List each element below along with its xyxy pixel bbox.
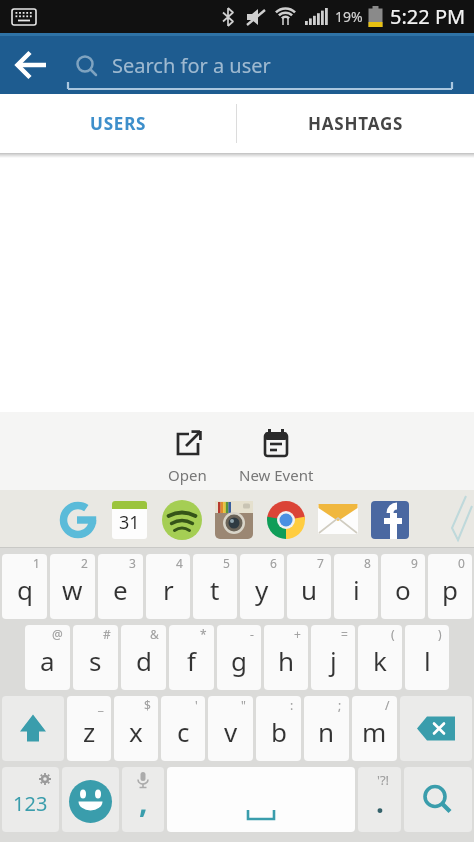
button[interactable]: j [311,625,355,690]
staticText: q [17,572,33,607]
button[interactable]: c [161,696,205,761]
button[interactable]: r [146,554,190,619]
staticText: 0 [458,555,465,571]
staticText: 2 [81,555,88,571]
button[interactable]: o [381,554,425,619]
button[interactable]: x [114,696,158,761]
staticText: 31 [119,510,140,535]
staticText: ' [195,697,198,713]
staticText: 7 [317,555,324,571]
button[interactable] [368,498,411,541]
button[interactable] [0,33,60,94]
staticText: r [163,572,174,607]
staticText: 3 [129,555,136,571]
staticText: o [395,572,411,607]
button[interactable]: New Event [226,412,326,490]
staticText: h [278,643,295,678]
button[interactable]: z [67,696,111,761]
staticText: p [442,572,458,607]
button[interactable] [404,767,472,832]
staticText: # [103,626,111,642]
staticText: s [89,643,102,678]
staticText: = [341,626,348,642]
staticText: m [362,714,387,749]
button[interactable]: w [50,554,95,619]
button[interactable]: q [2,554,47,619]
staticText: 5:22 PM [390,3,466,30]
staticText: e [113,572,128,607]
staticText: Search for a user [112,52,271,79]
button[interactable]: , [122,767,164,832]
button[interactable]: l [405,625,449,690]
button[interactable]: 123 [2,767,59,832]
staticText: ; [338,697,342,713]
staticText: ) [438,626,442,642]
staticText: 1 [33,555,40,571]
button[interactable]: y [240,554,284,619]
staticText: _ [98,697,104,713]
button[interactable]: u [287,554,331,619]
staticText: d [136,643,152,678]
button[interactable] [212,498,255,541]
staticText: t [210,572,220,607]
button[interactable]: k [358,625,402,690]
button[interactable] [56,498,99,541]
button[interactable]: s [73,625,118,690]
staticText: USERS [90,112,147,135]
button[interactable]: m [352,696,397,761]
staticText: l [424,643,431,678]
button[interactable]: e [98,554,143,619]
staticText: 19% [335,7,363,26]
button[interactable]: h [264,625,308,690]
staticText: HASHTAGS [308,112,404,135]
staticText: & [150,626,159,642]
staticText: c [177,714,190,749]
button[interactable]: t [193,554,237,619]
staticText: w [62,572,83,607]
staticText: u [301,572,318,607]
staticText: v [224,714,238,749]
button[interactable]: USERS [0,94,236,153]
staticText: @ [52,626,63,642]
staticText: n [318,714,335,749]
button[interactable]: i [334,554,378,619]
button[interactable] [62,767,119,832]
button[interactable]: b [256,696,301,761]
button[interactable]: 31 [108,498,151,541]
staticText: New Event [239,465,314,485]
staticText: - [250,626,254,642]
button[interactable]: HASHTAGS [237,94,474,153]
staticText: x [129,714,143,749]
staticText: : [290,697,294,713]
staticText: 8 [364,555,371,571]
button[interactable] [2,696,64,761]
staticText: ( [391,626,395,642]
button[interactable]: g [217,625,261,690]
button[interactable]: f [169,625,214,690]
button[interactable] [160,498,203,541]
button[interactable]: . [358,767,401,832]
staticText: a [40,643,55,678]
staticText: i [353,572,360,607]
button[interactable] [400,696,472,761]
button[interactable]: Open [148,412,226,490]
button[interactable] [316,498,359,541]
staticText: '?! [377,771,390,789]
button[interactable]: Search for a user [66,33,454,94]
staticText: 123 [13,790,48,817]
staticText: k [373,643,387,678]
staticText: $ [144,697,151,713]
button[interactable]: v [208,696,253,761]
button[interactable]: d [121,625,166,690]
staticText: 9 [411,555,418,571]
staticText: g [231,643,247,678]
button[interactable] [264,498,307,541]
button[interactable]: a [25,625,70,690]
staticText: y [255,572,269,607]
button[interactable]: n [304,696,349,761]
staticText: 5 [223,555,230,571]
button[interactable]: p [428,554,472,619]
button[interactable] [167,767,355,832]
staticText: " [241,697,246,713]
staticText: Open [168,465,207,485]
